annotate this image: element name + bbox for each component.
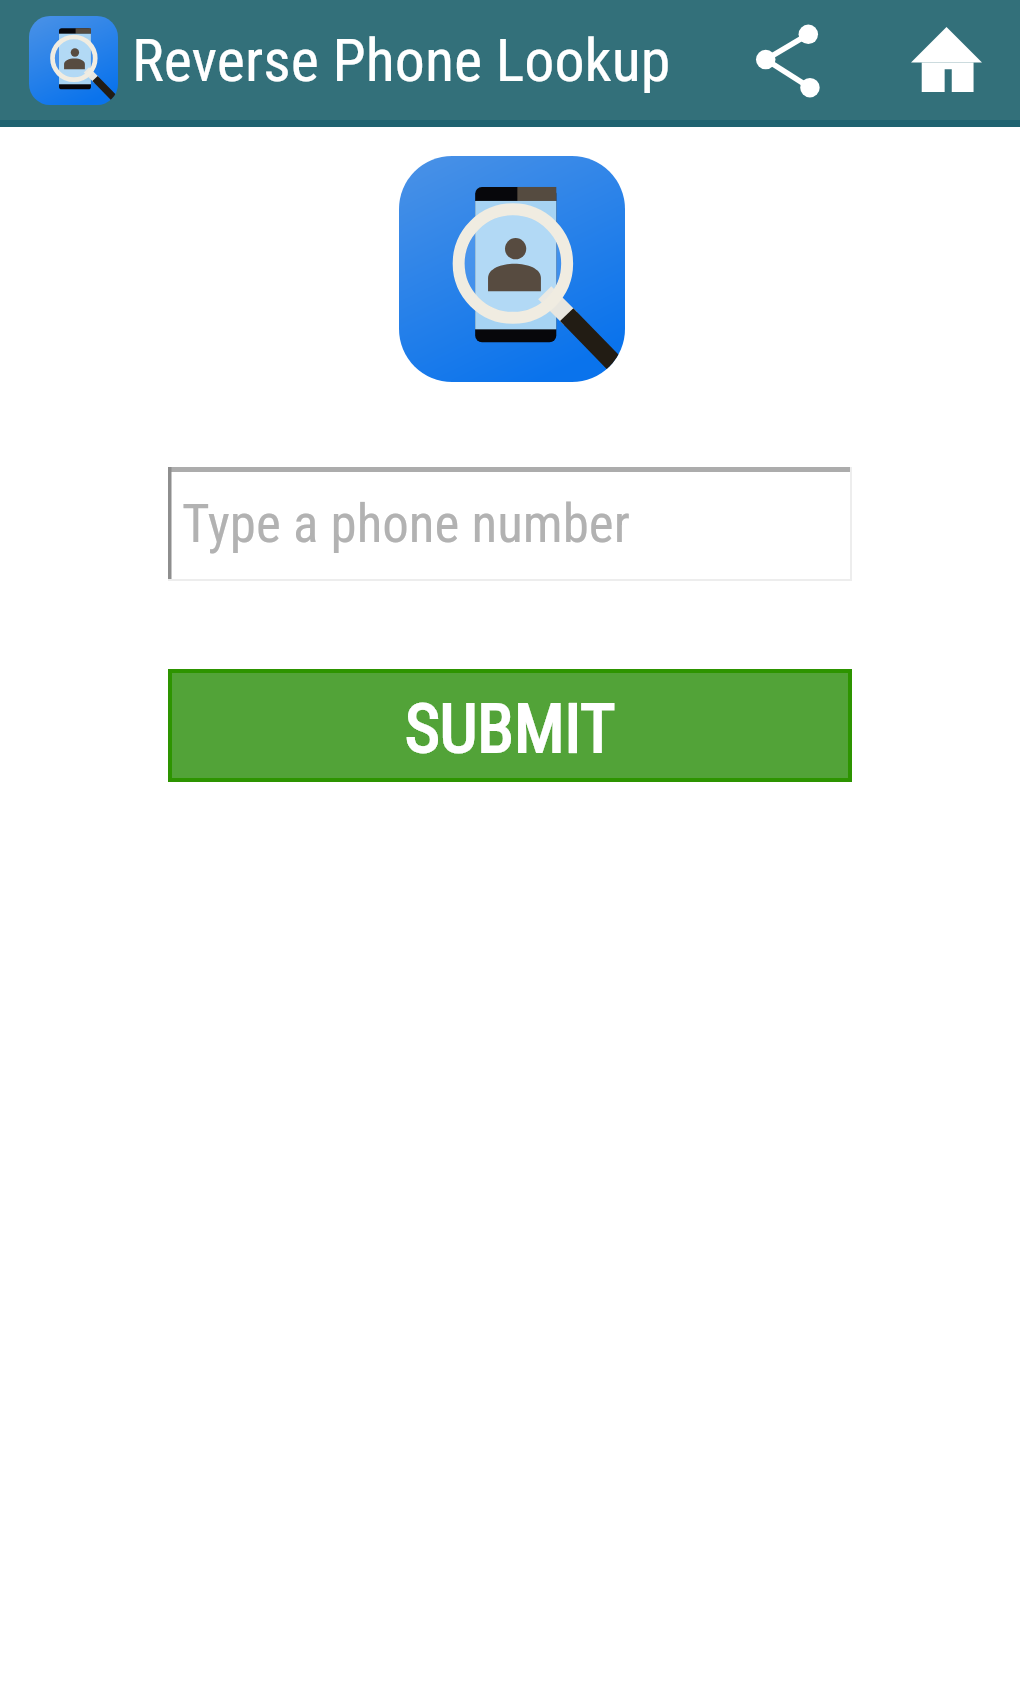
button[interactable]: Share — [702, 0, 873, 120]
button[interactable]: Type a phone number — [168, 467, 852, 581]
staticText: Type a phone number — [182, 493, 630, 555]
button[interactable]: SUBMIT — [172, 673, 848, 778]
staticText: SUBMIT — [405, 690, 616, 769]
staticText: Reverse Phone Lookup — [132, 25, 671, 95]
button[interactable]: Home — [873, 0, 1020, 120]
